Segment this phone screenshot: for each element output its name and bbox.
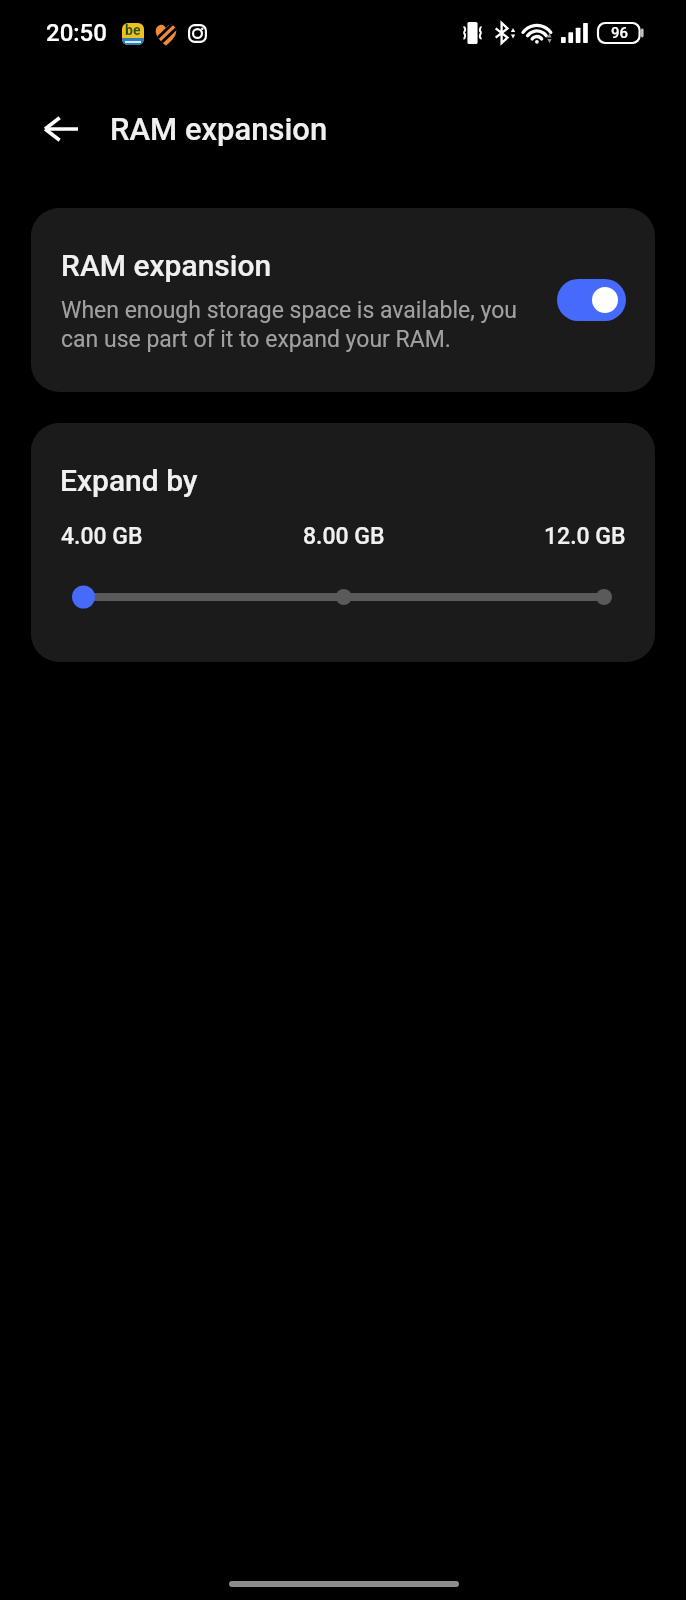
- button[interactable]: RAM expansion: [31, 208, 655, 392]
- button[interactable]: RAM expansion toggle: [557, 279, 626, 321]
- staticText: Expand by: [60, 463, 198, 498]
- staticText: be: [125, 23, 141, 38]
- staticText: 96: [611, 24, 629, 42]
- staticText: 20:50: [46, 19, 107, 47]
- staticText: 12.0 GB: [544, 523, 626, 550]
- button[interactable]: Back: [35, 103, 87, 155]
- staticText: 8.00 GB: [303, 523, 385, 550]
- staticText: When enough storage space is available, …: [61, 297, 532, 353]
- staticText: RAM expansion: [61, 248, 272, 283]
- staticText: 4.00 GB: [61, 523, 143, 550]
- staticText: RAM expansion: [110, 111, 328, 147]
- button[interactable]: Expand by slider: [52, 581, 634, 613]
